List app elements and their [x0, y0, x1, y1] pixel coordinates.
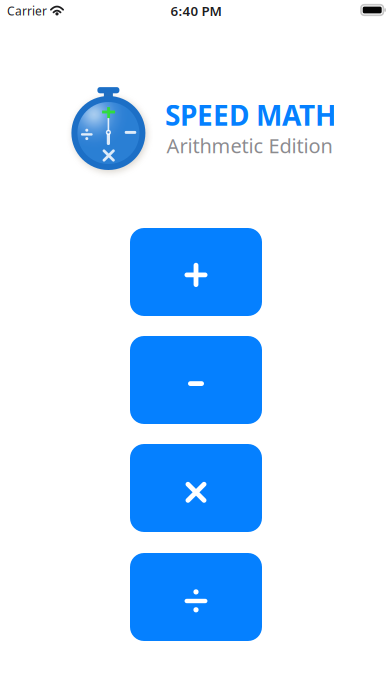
button[interactable]: Addition [130, 228, 262, 316]
button[interactable]: Division [130, 553, 262, 641]
button[interactable]: Multiplication [130, 444, 262, 532]
staticText: 6:40 PM [170, 2, 221, 20]
staticText: SPEED MATH [165, 96, 336, 134]
button[interactable]: Subtraction [130, 336, 262, 424]
staticText: Carrier [7, 3, 47, 19]
staticText: Arithmetic Edition [166, 132, 332, 159]
